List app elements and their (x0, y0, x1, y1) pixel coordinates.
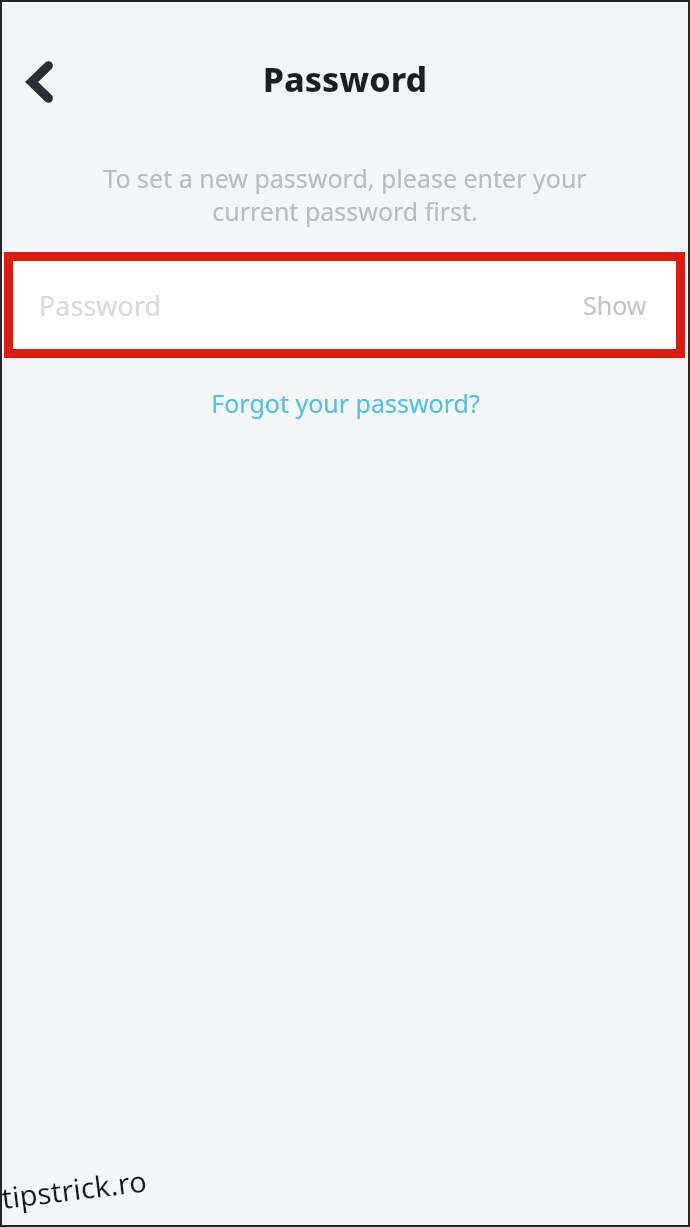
staticText: Forgot your password? (211, 386, 480, 420)
button[interactable]: Show (579, 284, 651, 326)
staticText: Password (0, 56, 690, 102)
button[interactable]: Forgot your password? (197, 381, 494, 425)
staticText: To set a new password, please enter your… (78, 161, 612, 228)
staticText: tipstrick.ro (0, 1160, 149, 1217)
button[interactable]: Back (11, 50, 69, 114)
staticText: Password (39, 287, 162, 324)
staticText: Show (583, 288, 647, 322)
button[interactable]: Password (13, 261, 676, 349)
